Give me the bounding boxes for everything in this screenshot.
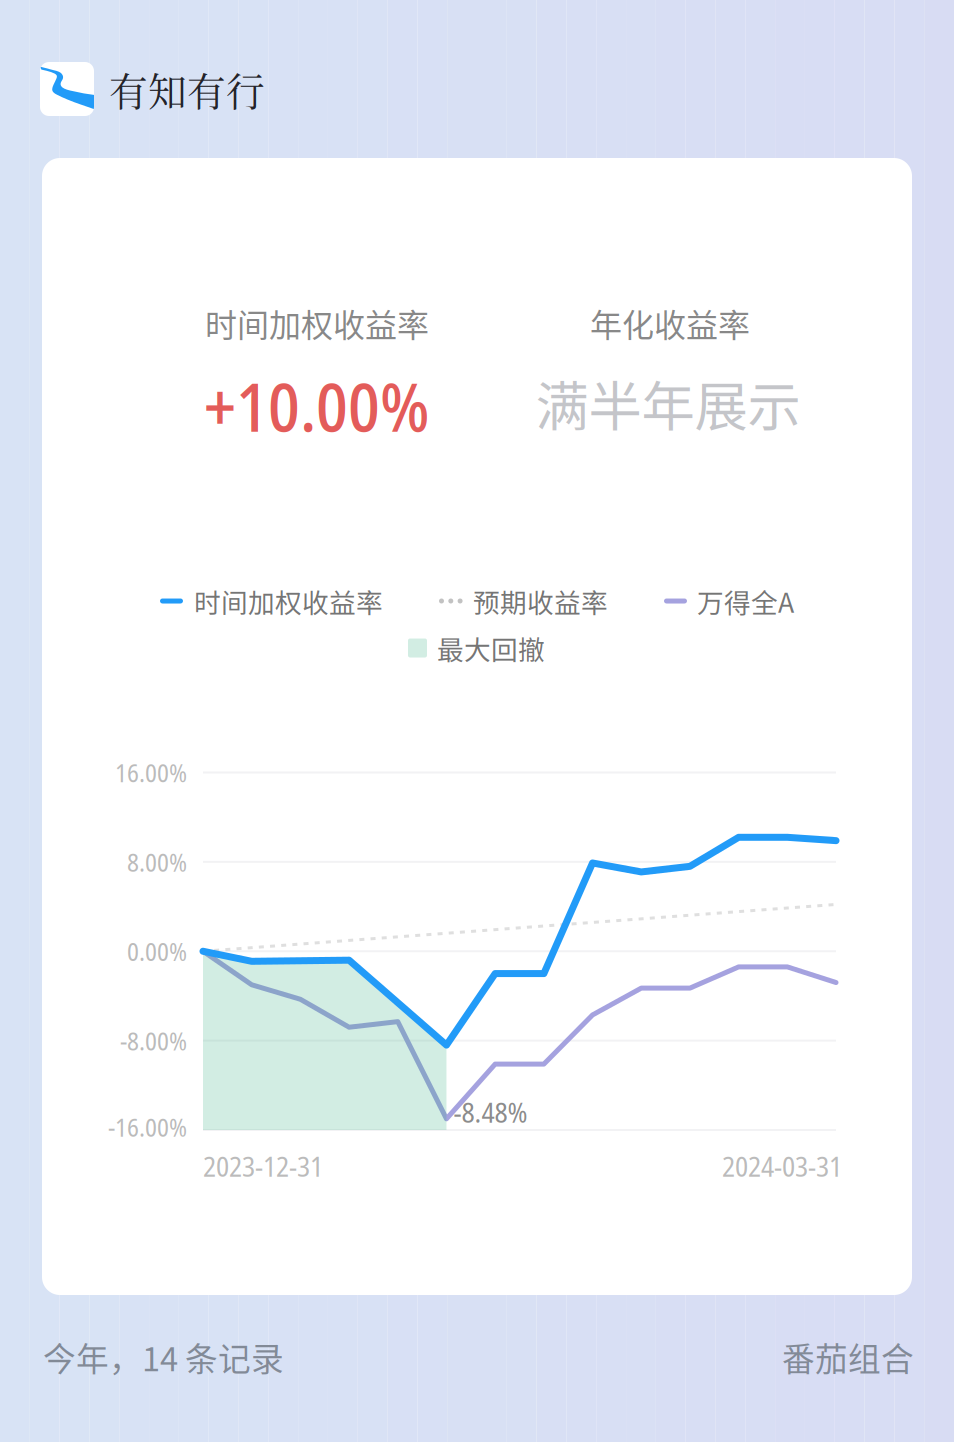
staticText: 满半年展示 <box>535 364 800 442</box>
staticText: 时间加权收益率 <box>194 582 383 620</box>
button[interactable]: 预期收益率 <box>439 581 639 621</box>
staticText: -16.00% <box>108 1110 187 1144</box>
staticText: -8.00% <box>120 1023 187 1058</box>
staticText: 8.00% <box>127 845 187 879</box>
button[interactable]: 有知有行 <box>40 59 265 119</box>
staticText: 年化收益率 <box>590 300 750 346</box>
button[interactable]: 最大回撤 <box>408 628 578 668</box>
staticText: 2023-12-31 <box>203 1147 323 1185</box>
staticText: +10.00% <box>204 361 430 451</box>
staticText: 时间加权收益率 <box>205 300 429 346</box>
staticText: 0.00% <box>127 934 187 968</box>
button[interactable]: 时间加权收益率 <box>160 581 420 621</box>
staticText: 万得全A <box>697 582 794 620</box>
button[interactable]: 番茄组合 <box>714 1335 914 1379</box>
staticText: 有知有行 <box>109 61 265 117</box>
button[interactable]: 收益率走势卡片 <box>42 158 912 1295</box>
staticText: 16.00% <box>115 755 187 790</box>
staticText: 预期收益率 <box>473 582 608 620</box>
staticText: 今年，14 条记录 <box>43 1333 284 1381</box>
staticText: 番茄组合 <box>782 1333 914 1381</box>
staticText: 最大回撤 <box>437 629 545 667</box>
button[interactable]: 今年，14 条记录 <box>43 1335 303 1379</box>
staticText: 2024-03-31 <box>722 1147 842 1185</box>
button[interactable]: 万得全A <box>664 581 824 621</box>
staticText: -8.48% <box>453 1093 527 1131</box>
